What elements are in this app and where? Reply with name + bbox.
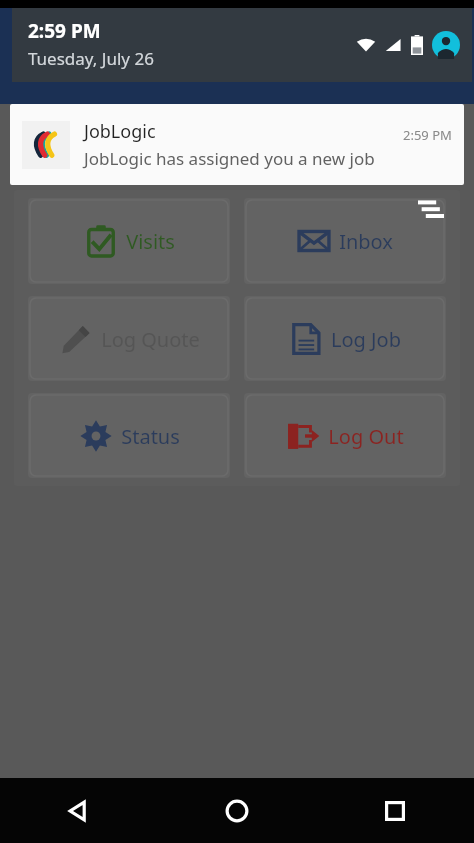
other: Sort messages <box>418 200 444 220</box>
button[interactable]: Log Job <box>244 296 446 381</box>
staticText: JobLogic has assigned you a new job <box>84 147 375 170</box>
button[interactable]: Status <box>28 393 230 478</box>
staticText: Log Quote <box>101 326 200 353</box>
button[interactable]: JobLogic <box>10 104 464 185</box>
staticText: JobLogic <box>84 119 403 144</box>
button[interactable]: Inbox <box>244 198 446 284</box>
staticText: Log Out <box>328 423 404 450</box>
button[interactable]: Log Quote <box>28 296 230 381</box>
button[interactable]: Visits <box>28 198 230 284</box>
button[interactable]: Recent apps <box>316 778 474 843</box>
button[interactable]: Log Out <box>244 393 446 478</box>
staticText: Inbox <box>339 228 393 255</box>
staticText: 2:59 PM <box>403 126 452 144</box>
button[interactable]: Back <box>0 778 158 843</box>
staticText: 2:59 PM <box>28 18 101 44</box>
button[interactable]: Home <box>158 778 316 843</box>
staticText: Visits <box>126 228 175 255</box>
staticText: Log Job <box>331 326 401 353</box>
staticText: Tuesday, July 26 <box>28 47 154 70</box>
staticText: Status <box>121 423 180 450</box>
